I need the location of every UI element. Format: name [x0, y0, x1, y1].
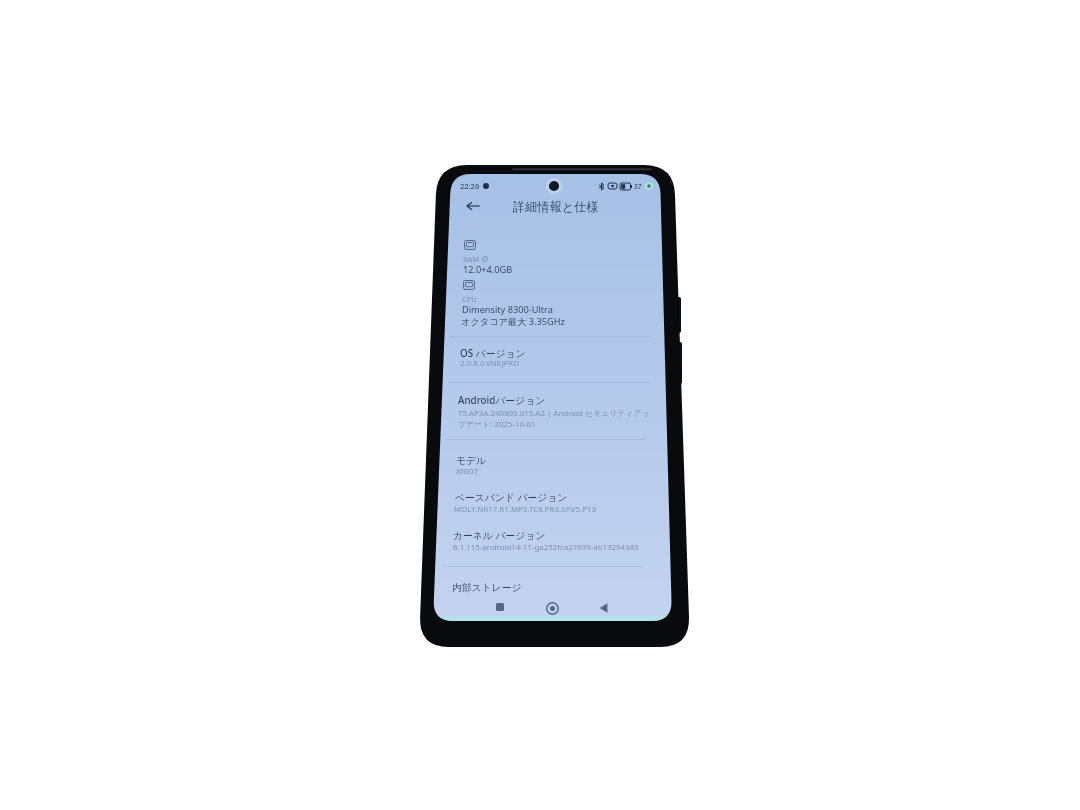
staticText: 詳細情報と仕様	[513, 199, 599, 214]
staticText: 37	[634, 182, 642, 191]
staticText: 6.1.115-android14-11-ga252fca27699-ab132…	[453, 542, 639, 553]
staticText: 12.0+4.0GB	[463, 263, 513, 276]
button[interactable]: Home	[542, 598, 562, 618]
staticText: XIG07	[456, 466, 479, 477]
button[interactable]: Recents	[490, 597, 510, 617]
staticText: 2.0.8.0.VNEJPKD	[460, 358, 520, 369]
staticText: ベースバンド バージョン	[455, 491, 568, 504]
staticText: T5.AP3A.240905.015.A2 | Android セキュリティアッ…	[458, 408, 651, 429]
staticText: RAM	[463, 254, 480, 264]
staticText: オクタコア最大 3.35GHz	[461, 315, 565, 328]
staticText: モデル	[456, 455, 487, 467]
staticText: CPU	[462, 294, 477, 304]
staticText: 22:26	[460, 181, 480, 191]
staticText: 内部ストレージ	[452, 582, 522, 594]
staticText: OS バージョン	[460, 347, 526, 360]
button[interactable]: Back	[464, 197, 482, 215]
button[interactable]: Back	[593, 598, 613, 618]
staticText: MOLY.NR17.R1.MP3.TC8.PR3.SP.V5.P13	[454, 504, 596, 515]
staticText: Dimensity 8300-Ultra	[462, 303, 553, 316]
staticText: カーネル バージョン	[453, 529, 546, 542]
staticText: Androidバージョン	[458, 394, 546, 407]
